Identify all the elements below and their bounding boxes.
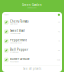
- staticText: Cherry Tomato: [10, 20, 29, 23]
- staticText: 2d: [58, 21, 60, 23]
- staticText: Ready to pick: [10, 61, 19, 63]
- staticText: Needs more sun: [10, 42, 22, 44]
- staticText: Butter Lettuce: [10, 57, 30, 61]
- staticText: 5 need care: [27, 7, 36, 9]
- button[interactable]: Butter Lettuce: [2, 55, 62, 65]
- button[interactable]: Cherry Tomato: [2, 18, 62, 27]
- staticText: Bell Pepper: [10, 48, 28, 51]
- staticText: Looking healthy: [10, 33, 21, 34]
- staticText: Peppermint: [10, 38, 27, 42]
- button[interactable]: Peppermint: [2, 36, 62, 46]
- staticText: Water today: [10, 23, 18, 25]
- staticText: Growing well: [10, 51, 18, 53]
- button[interactable]: Sweet Basil: [2, 27, 62, 36]
- staticText: TODAY: [4, 14, 9, 16]
- staticText: Green Garden: [22, 3, 42, 7]
- button[interactable]: See all plants: [2, 66, 62, 72]
- staticText: Sweet Basil: [10, 29, 25, 32]
- staticText: See all plants: [23, 67, 41, 70]
- staticText: 4d: [58, 31, 60, 33]
- button[interactable]: Bell Pepper: [2, 46, 62, 55]
